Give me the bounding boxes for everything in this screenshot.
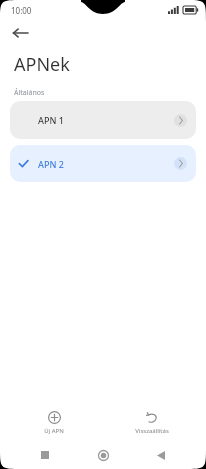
- staticText: APN 2: [38, 158, 64, 170]
- button[interactable]: Legutóbbiak: [32, 442, 58, 468]
- button[interactable]: Új APN: [11, 411, 97, 435]
- staticText: Általános: [14, 88, 45, 98]
- staticText: APN 1: [38, 114, 64, 126]
- button[interactable]: APN 1: [10, 101, 196, 139]
- button[interactable]: Vissza: [8, 21, 32, 45]
- button[interactable]: APN 2: [10, 145, 196, 182]
- staticText: 10:00: [11, 5, 32, 16]
- button[interactable]: Kezdőképernyő: [90, 442, 116, 468]
- button[interactable]: Visszaállítás: [109, 411, 195, 435]
- staticText: Új APN: [44, 427, 64, 435]
- button[interactable]: Vissza: [148, 442, 174, 468]
- button[interactable]: Részletek: [174, 114, 187, 127]
- staticText: Visszaállítás: [135, 427, 169, 435]
- staticText: APNek: [14, 52, 70, 77]
- button[interactable]: Részletek: [174, 157, 187, 170]
